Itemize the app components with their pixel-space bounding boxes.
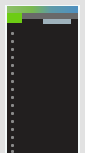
button[interactable] xyxy=(7,141,78,149)
button[interactable] xyxy=(7,69,78,77)
button[interactable] xyxy=(7,53,78,61)
button[interactable] xyxy=(7,77,78,85)
button[interactable] xyxy=(7,37,78,45)
button[interactable] xyxy=(7,29,78,37)
button[interactable] xyxy=(7,45,78,53)
button[interactable] xyxy=(7,85,78,93)
button[interactable] xyxy=(7,93,78,101)
button[interactable] xyxy=(7,149,78,153)
button[interactable] xyxy=(7,101,78,109)
button[interactable] xyxy=(7,133,78,141)
button[interactable] xyxy=(7,61,78,69)
button[interactable] xyxy=(7,125,78,133)
button[interactable] xyxy=(7,117,78,125)
button[interactable] xyxy=(7,109,78,117)
